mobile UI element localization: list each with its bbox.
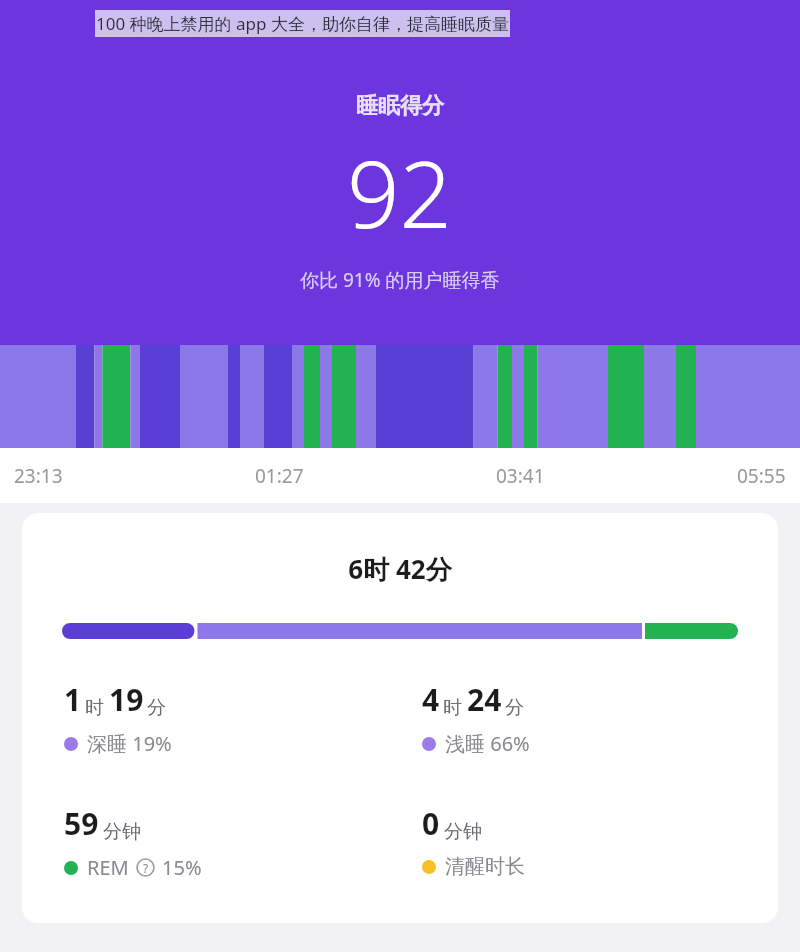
staticText: 时 [85,696,104,720]
staticText: 01:27 [255,463,304,489]
staticText: 92 [347,130,453,255]
staticText: 05:55 [737,463,786,489]
staticText: 19 [109,679,144,720]
staticText: 时 [443,696,462,720]
staticText: 你比 91% 的用户睡得香 [300,267,500,293]
button[interactable]: 6时 42分 [22,513,778,923]
staticText: 分 [147,696,166,720]
staticText: REM [87,854,129,881]
staticText: 清醒时长 [445,854,525,879]
staticText: ? [143,860,149,876]
button[interactable]: 100 种晚上禁用的 app 大全，助你自律，提高睡眠质量 [95,10,510,37]
staticText: 分 [505,696,524,720]
staticText: 0 [422,803,440,844]
staticText: 分钟 [103,820,141,844]
staticText: 24 [467,679,502,720]
staticText: 深睡 19% [87,730,172,757]
staticText: 睡眠得分 [356,92,444,120]
staticText: 4 [422,679,440,720]
staticText: 23:13 [14,463,63,489]
staticText: 6时 42分 [348,551,452,587]
staticText: 15% [162,854,202,881]
staticText: 03:41 [496,463,545,489]
button[interactable]: REM 说明 [136,858,155,877]
staticText: 1 [64,679,82,720]
staticText: 100 种晚上禁用的 app 大全，助你自律，提高睡眠质量 [96,12,509,35]
staticText: 59 [64,803,99,844]
staticText: 浅睡 66% [445,730,530,757]
staticText: 分钟 [444,820,482,844]
